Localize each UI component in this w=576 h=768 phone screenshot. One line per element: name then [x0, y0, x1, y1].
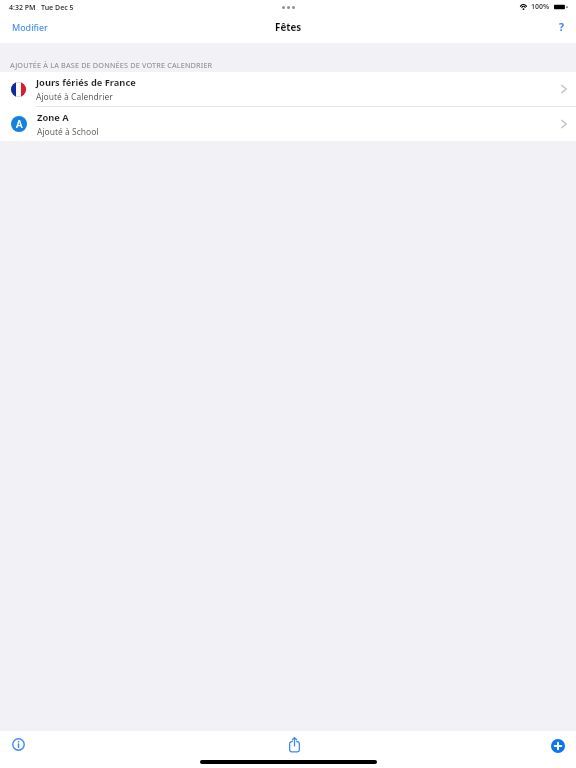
button[interactable]: Add — [545, 733, 571, 759]
staticText: Ajouté à Calendrier — [36, 91, 113, 103]
staticText: Tue Dec 5 — [41, 3, 74, 13]
button[interactable]: A — [0, 107, 576, 141]
button[interactable]: Jours fériés de France — [0, 72, 576, 106]
staticText: A — [16, 117, 23, 131]
staticText: Ajouté à School — [37, 126, 99, 138]
staticText: 4:32 PM — [9, 3, 36, 13]
staticText: Jours fériés de France — [36, 76, 136, 89]
staticText: Modifier — [12, 21, 48, 33]
staticText: Fêtes — [275, 21, 302, 34]
button[interactable]: Help — [551, 19, 576, 40]
staticText: ? — [559, 20, 565, 34]
button[interactable]: Share — [281, 732, 308, 757]
staticText: Zone A — [37, 111, 69, 124]
staticText: 100% — [531, 2, 550, 12]
staticText: AJOUTÉE À LA BASE DE DONNÉES DE VOTRE CA… — [10, 60, 213, 70]
button[interactable]: Modifier — [0, 18, 56, 41]
button[interactable]: Info — [6, 732, 31, 757]
